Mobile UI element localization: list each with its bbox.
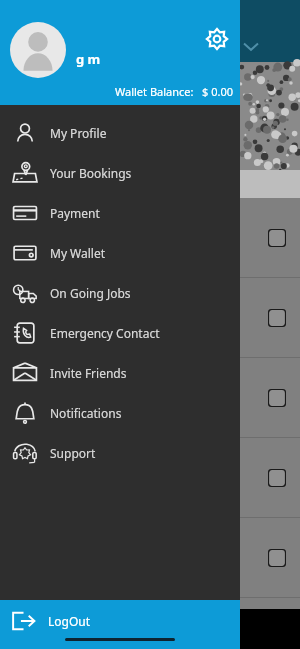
button[interactable]: Invite Friends	[0, 353, 240, 393]
staticText: My Wallet	[50, 245, 106, 261]
staticText: g m	[76, 50, 101, 68]
staticText: Wallet Balance: $ 0.00	[115, 84, 234, 99]
staticText: Emergency Contact	[50, 325, 160, 341]
staticText: My Profile	[50, 125, 107, 141]
button[interactable]: Profile picture	[10, 22, 66, 78]
button[interactable]: Emergency Contact	[0, 313, 240, 353]
button[interactable]: LogOut	[0, 600, 240, 649]
staticText: Support	[50, 445, 96, 461]
staticText: Your Bookings	[50, 165, 132, 181]
staticText: LogOut	[48, 613, 91, 629]
button[interactable]: On Going Jobs	[0, 273, 240, 313]
staticText: On Going Jobs	[50, 285, 131, 301]
staticText: Payment	[50, 205, 100, 221]
staticText: Notifications	[50, 405, 122, 421]
button[interactable]: Your Bookings	[0, 153, 240, 193]
button[interactable]: Payment	[0, 193, 240, 233]
button[interactable]: Notifications	[0, 393, 240, 433]
staticText: Invite Friends	[50, 365, 127, 381]
button[interactable]: Settings	[206, 28, 228, 50]
button[interactable]: My Profile	[0, 113, 240, 153]
button[interactable]: Support	[0, 433, 240, 473]
button[interactable]: My Wallet	[0, 233, 240, 273]
